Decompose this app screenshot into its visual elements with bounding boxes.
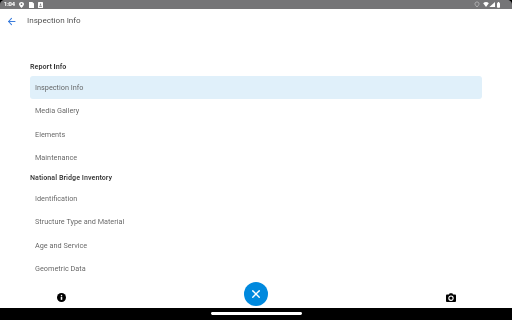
button[interactable]: Structure Type and Material [30,210,482,233]
staticText: Maintenance [35,153,78,162]
button[interactable]: Inspection Info [30,76,482,99]
staticText: Inspection Info [35,83,84,92]
staticText: Media Gallery [35,106,80,115]
staticText: Identification [35,194,78,203]
button[interactable]: Close [244,282,268,306]
button[interactable]: Camera [439,285,463,309]
staticText: National Bridge Inventory [30,173,113,181]
staticText: 1:04 [4,1,15,8]
staticText: Geometric Data [35,264,86,273]
staticText: Report Info [30,62,67,70]
button[interactable]: Geometric Data [30,257,482,280]
staticText: Elements [35,130,66,139]
button[interactable]: Elements [30,123,482,146]
button[interactable]: Age and Service [30,234,482,257]
button[interactable]: Media Gallery [30,99,482,122]
button[interactable]: Maintenance [30,146,482,169]
staticText: Inspection Info [27,15,81,24]
staticText: Age and Service [35,241,88,250]
button[interactable]: Identification [30,187,482,210]
button[interactable]: Info [49,285,73,309]
button[interactable]: Back [1,11,21,31]
staticText: Structure Type and Material [35,217,125,226]
